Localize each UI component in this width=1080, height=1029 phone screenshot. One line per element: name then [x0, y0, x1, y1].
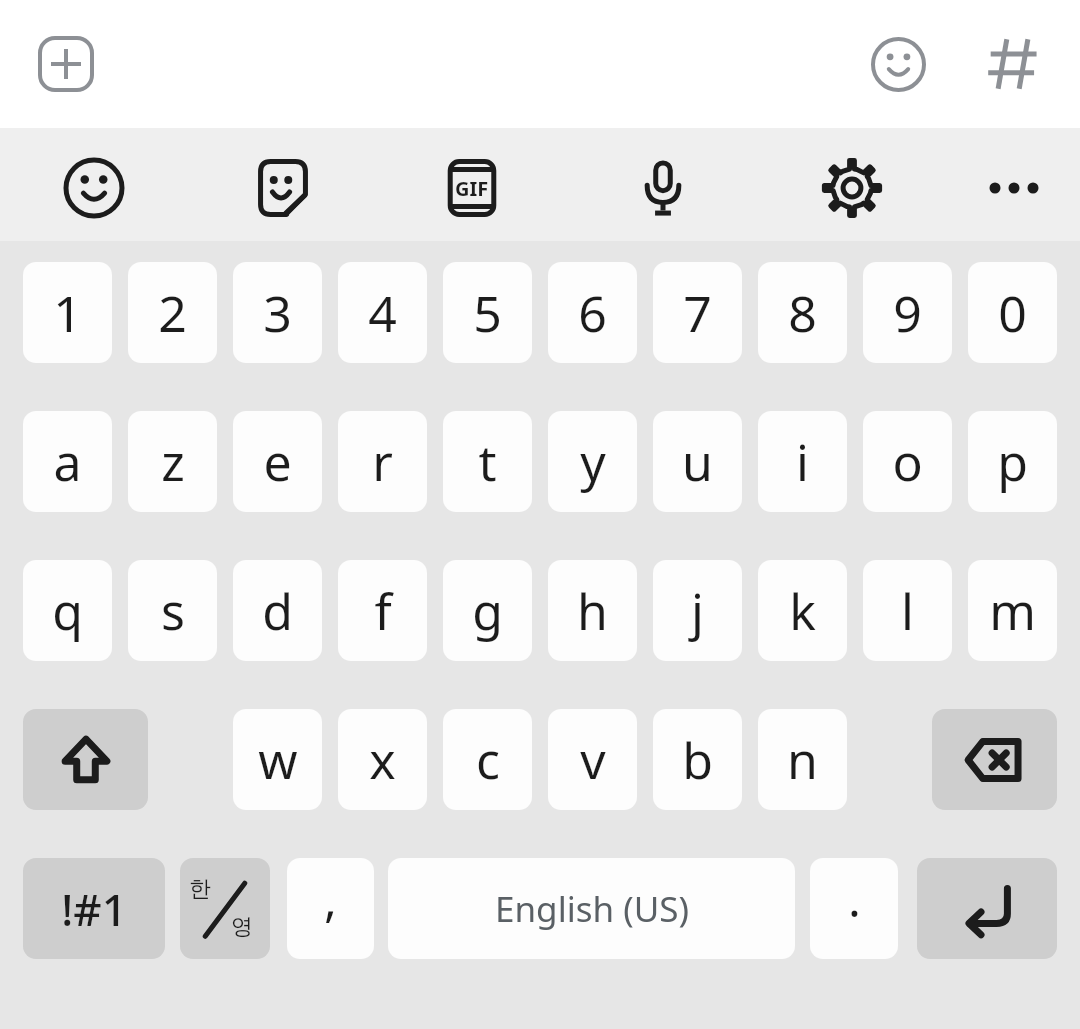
button[interactable]: 5	[443, 262, 532, 363]
button[interactable]: 1	[23, 262, 112, 363]
button[interactable]: y	[548, 411, 637, 512]
staticText: n	[787, 726, 818, 794]
staticText: e	[263, 428, 292, 496]
button[interactable]: i	[758, 411, 847, 512]
button[interactable]: Hashtag	[982, 33, 1044, 95]
staticText: v	[580, 726, 606, 794]
button[interactable]: l	[863, 560, 952, 661]
button[interactable]: 6	[548, 262, 637, 363]
button[interactable]: 0	[968, 262, 1057, 363]
staticText: .	[848, 866, 861, 931]
staticText: 8	[788, 279, 817, 347]
staticText: 3	[263, 279, 292, 347]
button[interactable]: u	[653, 411, 742, 512]
staticText: h	[577, 577, 608, 645]
staticText: !#1	[61, 879, 127, 939]
button[interactable]: Emoji	[61, 155, 127, 221]
staticText: 2	[158, 279, 187, 347]
button[interactable]: Korean English toggle	[180, 858, 270, 959]
staticText: u	[682, 428, 713, 496]
button[interactable]: z	[128, 411, 217, 512]
button[interactable]: Enter	[917, 858, 1057, 959]
staticText: q	[52, 577, 83, 645]
staticText: o	[892, 428, 923, 496]
button[interactable]: Settings	[819, 155, 885, 221]
button[interactable]: s	[128, 560, 217, 661]
staticText: c	[476, 726, 500, 794]
staticText: 영	[231, 913, 253, 941]
button[interactable]: Emoji	[869, 35, 928, 94]
staticText: English (US)	[495, 885, 689, 933]
button[interactable]: d	[233, 560, 322, 661]
staticText: 5	[473, 279, 502, 347]
button[interactable]: t	[443, 411, 532, 512]
staticText: t	[478, 428, 497, 496]
staticText: 한	[189, 875, 211, 903]
button[interactable]: .	[810, 858, 898, 959]
staticText: x	[369, 726, 396, 794]
button[interactable]: w	[233, 709, 322, 810]
button[interactable]: Shift	[23, 709, 148, 810]
button[interactable]: 8	[758, 262, 847, 363]
staticText: y	[580, 428, 606, 496]
button[interactable]: 2	[128, 262, 217, 363]
button[interactable]: ,	[287, 858, 374, 959]
staticText: s	[161, 577, 185, 645]
button[interactable]: n	[758, 709, 847, 810]
button[interactable]: 7	[653, 262, 742, 363]
button[interactable]: p	[968, 411, 1057, 512]
button[interactable]: English (US)	[388, 858, 795, 959]
staticText: i	[796, 428, 809, 496]
button[interactable]: 3	[233, 262, 322, 363]
button[interactable]: Stickers	[250, 155, 316, 221]
button[interactable]: o	[863, 411, 952, 512]
staticText: 4	[368, 279, 397, 347]
staticText: 9	[893, 279, 922, 347]
button[interactable]: More options	[981, 155, 1047, 221]
button[interactable]: f	[338, 560, 427, 661]
staticText: l	[901, 577, 914, 645]
staticText: GIF	[455, 175, 489, 202]
staticText: k	[789, 577, 816, 645]
staticText: g	[472, 577, 503, 645]
button[interactable]: v	[548, 709, 637, 810]
button[interactable]: h	[548, 560, 637, 661]
button[interactable]: c	[443, 709, 532, 810]
button[interactable]: x	[338, 709, 427, 810]
button[interactable]: a	[23, 411, 112, 512]
button[interactable]: 9	[863, 262, 952, 363]
button[interactable]: j	[653, 560, 742, 661]
button[interactable]: q	[23, 560, 112, 661]
staticText: f	[374, 577, 392, 645]
button[interactable]: Backspace	[932, 709, 1057, 810]
button[interactable]: k	[758, 560, 847, 661]
button[interactable]: GIF	[439, 155, 505, 221]
staticText: 6	[578, 279, 607, 347]
button[interactable]: Voice input	[630, 155, 696, 221]
staticText: r	[372, 428, 393, 496]
button[interactable]: b	[653, 709, 742, 810]
button[interactable]: 4	[338, 262, 427, 363]
staticText: a	[53, 428, 82, 496]
staticText: 0	[998, 279, 1027, 347]
staticText: z	[161, 428, 185, 496]
button[interactable]: Add	[38, 36, 94, 92]
button[interactable]: m	[968, 560, 1057, 661]
staticText: 7	[683, 279, 712, 347]
staticText: b	[682, 726, 713, 794]
staticText: w	[258, 726, 298, 794]
staticText: ,	[324, 866, 337, 931]
button[interactable]: !#1	[23, 858, 165, 959]
button[interactable]: e	[233, 411, 322, 512]
staticText: m	[989, 577, 1036, 645]
staticText: j	[691, 577, 704, 645]
staticText: d	[262, 577, 293, 645]
button[interactable]: g	[443, 560, 532, 661]
staticText: p	[997, 428, 1028, 496]
button[interactable]: r	[338, 411, 427, 512]
staticText: 1	[53, 279, 82, 347]
